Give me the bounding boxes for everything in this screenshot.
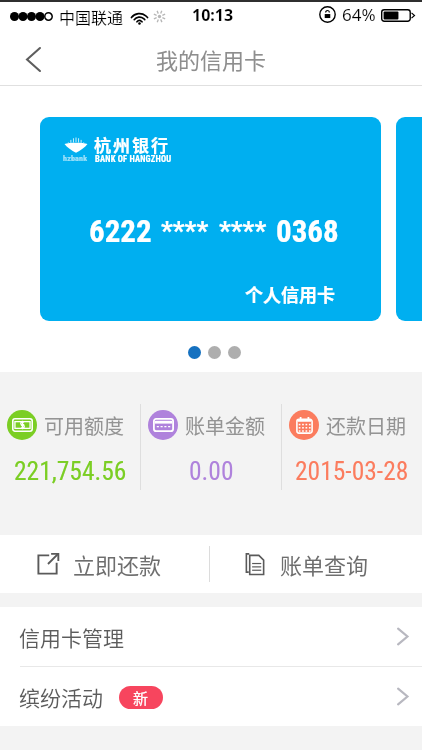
button[interactable]: 立即还款 [0, 535, 197, 593]
button[interactable]: 信用卡管理 [0, 607, 422, 666]
button[interactable]: 可用额度 [0, 372, 140, 535]
staticText: 2015-03-28 [295, 456, 409, 486]
staticText: 0368 [276, 213, 339, 249]
staticText: 账单查询 [280, 548, 369, 580]
staticText: 可用额度 [44, 411, 124, 440]
staticText: 立即还款 [73, 548, 162, 580]
staticText: 还款日期 [326, 411, 406, 440]
staticText: 221,754.56 [14, 456, 127, 486]
staticText: 信用卡管理 [19, 622, 124, 652]
button[interactable]: 账单查询 [200, 535, 412, 593]
staticText: 账单金额 [185, 411, 265, 440]
staticText: hzbank [63, 154, 88, 163]
staticText: 中国联通 [59, 5, 124, 28]
staticText: 杭州银行 [94, 132, 170, 157]
button[interactable]: 缤纷活动 [0, 667, 422, 726]
button[interactable] [396, 117, 422, 321]
staticText: 64% [342, 3, 376, 26]
staticText: 10:13 [192, 4, 234, 26]
button[interactable]: 还款日期 [282, 372, 422, 535]
other: Rotation lock [319, 6, 336, 23]
staticText: **** [219, 216, 267, 246]
staticText: BANK OF HANGZHOU [95, 154, 172, 164]
staticText: 0.00 [189, 456, 234, 486]
staticText: 新 [133, 687, 149, 709]
button[interactable]: hzbank [40, 117, 381, 321]
button[interactable]: 账单金额 [141, 372, 281, 535]
staticText: **** [161, 216, 209, 246]
staticText: 缤纷活动 [19, 682, 103, 712]
staticText: 6222 [89, 213, 152, 249]
staticText: 我的信用卡 [156, 43, 267, 75]
button[interactable]: Back [9, 35, 57, 83]
staticText: 个人信用卡 [245, 281, 335, 307]
